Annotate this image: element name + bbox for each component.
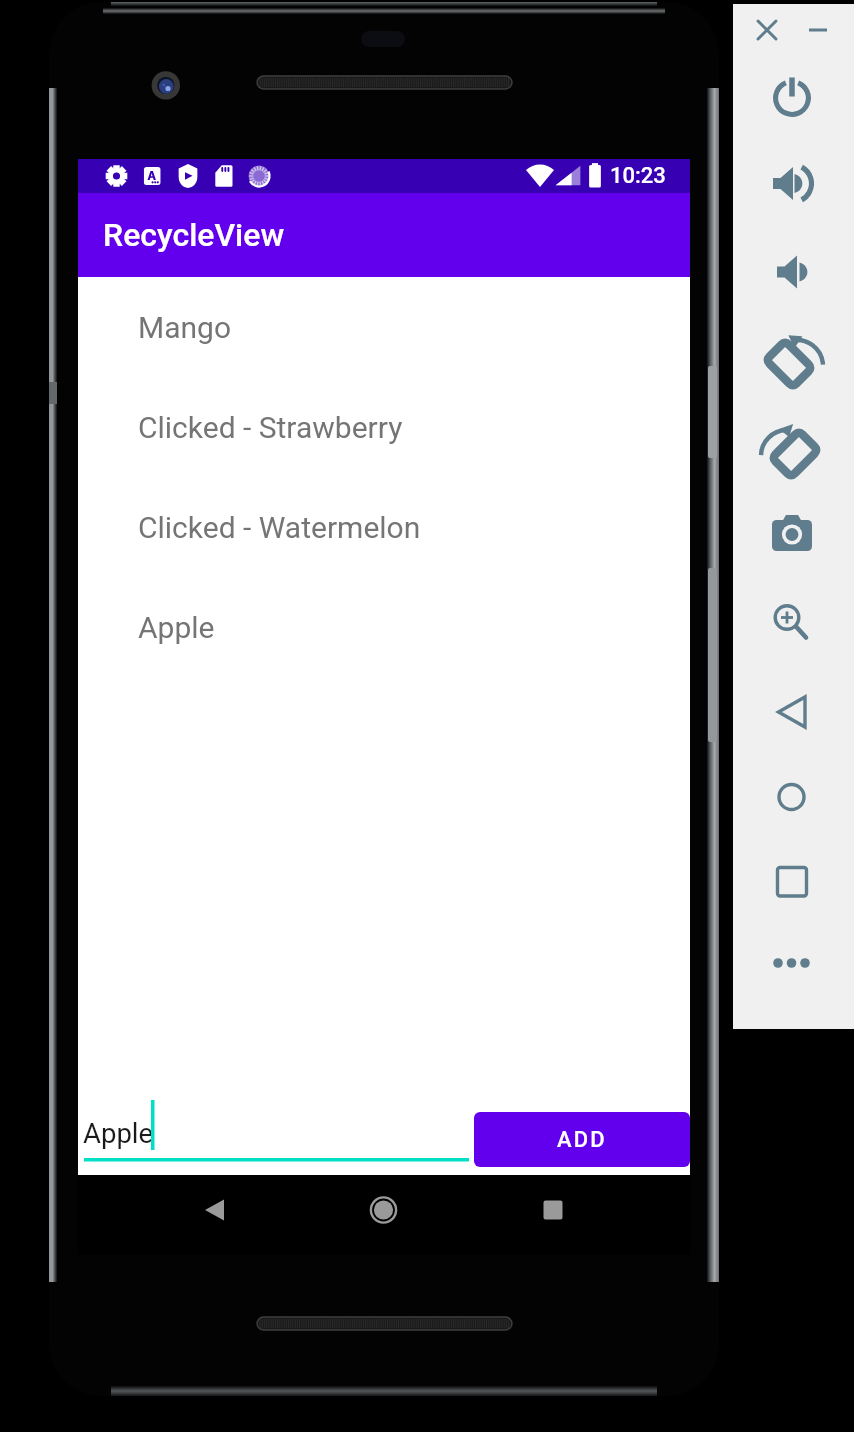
button[interactable]: Clicked - Watermelon	[78, 477, 690, 577]
button[interactable]: ADD	[474, 1112, 690, 1167]
staticText: Apple	[138, 610, 215, 645]
staticText: ADD	[557, 1127, 607, 1153]
button[interactable]: Back	[185, 1180, 245, 1240]
button[interactable]: Zoom	[763, 590, 821, 648]
button[interactable]: More	[763, 934, 821, 992]
staticText: RecycleView	[103, 216, 285, 254]
button[interactable]: Apple	[78, 577, 690, 677]
button[interactable]: Home	[354, 1180, 414, 1240]
button[interactable]: Rotate right	[763, 421, 821, 479]
staticText: Apple	[83, 1117, 154, 1149]
button[interactable]: Close	[748, 11, 786, 49]
staticText: Mango	[138, 310, 232, 345]
staticText: Clicked - Watermelon	[138, 510, 421, 545]
staticText: Clicked - Strawberry	[138, 410, 403, 445]
button[interactable]: Power	[763, 67, 821, 125]
button[interactable]: Volume up	[763, 155, 821, 213]
button[interactable]: Back	[763, 683, 821, 741]
button[interactable]: Clicked - Strawberry	[78, 377, 690, 477]
staticText: 10:23	[610, 163, 666, 189]
button[interactable]: Volume down	[763, 243, 821, 301]
button[interactable]: Minimize	[799, 11, 837, 49]
button[interactable]: Recents	[523, 1180, 583, 1240]
button[interactable]: Apple	[84, 1095, 469, 1161]
button[interactable]: Rotate left	[763, 331, 821, 389]
button[interactable]: Home	[763, 768, 821, 826]
button[interactable]: Mango	[78, 277, 690, 377]
button[interactable]: Screenshot	[763, 504, 821, 562]
button[interactable]: Overview	[763, 853, 821, 911]
